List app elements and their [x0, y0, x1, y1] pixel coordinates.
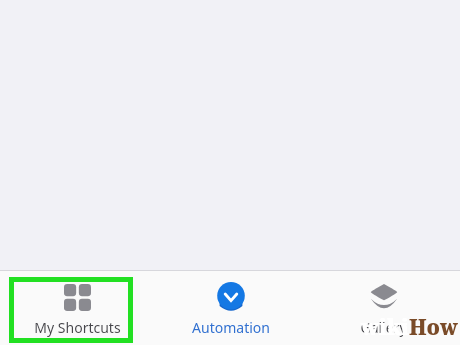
staticText: Gallery	[360, 318, 407, 337]
other: My Shortcuts	[64, 284, 91, 311]
button[interactable]: Automation	[154, 271, 307, 345]
staticText: Automation	[192, 318, 270, 337]
button[interactable]: My Shortcuts	[0, 271, 154, 345]
staticText: wiki	[361, 313, 409, 342]
other: Automation	[216, 282, 246, 312]
button[interactable]: Gallery	[307, 271, 460, 345]
staticText: My Shortcuts	[34, 318, 121, 337]
other: Gallery	[370, 283, 398, 311]
staticText: How	[409, 313, 458, 342]
